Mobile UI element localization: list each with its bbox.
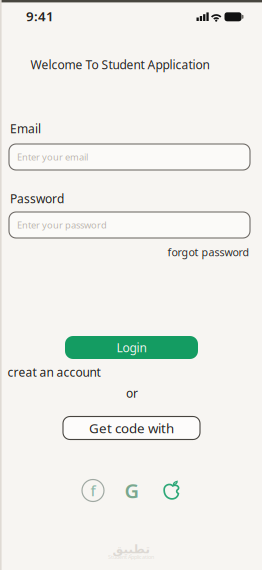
staticText: Enter your password: [17, 219, 107, 231]
staticText: Welcome To Student Application: [30, 56, 209, 72]
staticText: Get code with: [89, 419, 174, 437]
button[interactable]: Email: [9, 144, 250, 170]
button[interactable]: Sign in with Google: [120, 478, 144, 502]
staticText: f: [90, 481, 95, 500]
staticText: G: [124, 477, 139, 504]
button[interactable]: creat an account: [7, 364, 100, 380]
staticText: Email: [10, 120, 41, 136]
button[interactable]: Sign in with Apple: [160, 478, 184, 502]
button[interactable]: Sign in with Facebook: [81, 478, 105, 502]
button[interactable]: Password: [9, 212, 250, 238]
staticText: creat an account: [7, 364, 100, 380]
staticText: or: [126, 385, 138, 401]
staticText: Password: [10, 190, 64, 206]
button[interactable]: Get code with: [63, 416, 200, 439]
staticText: 9:41: [26, 7, 54, 25]
staticText: Enter your email: [17, 151, 88, 163]
button[interactable]: forgot password: [167, 245, 249, 259]
staticText: forgot password: [167, 245, 249, 259]
staticText: Login: [116, 339, 146, 355]
button[interactable]: Login: [65, 336, 198, 359]
staticText: Student Application: [108, 553, 154, 561]
staticText: تطبيق: [112, 542, 150, 556]
